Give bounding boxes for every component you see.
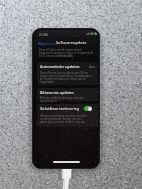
staticText: Geluidloze toelevering <box>40 106 80 111</box>
staticText: Automatische updates <box>40 64 80 69</box>
staticText: Algemeen <box>40 41 57 46</box>
staticText: Deze iPhone wordt automatisch <box>39 48 83 52</box>
staticText: Bètaversie-updates <box>40 90 74 95</box>
staticText: 21:46 <box>39 32 48 37</box>
button[interactable] <box>37 104 98 127</box>
staticText: en installeren wanneer deze wordt <box>40 77 86 81</box>
staticText: iPhone-beveiligingsreacties worden <box>40 114 87 118</box>
staticText: en is verbonden met wifi. <box>39 54 74 58</box>
staticText: Meer info... <box>59 54 75 58</box>
staticText: Aan <box>89 65 95 69</box>
staticText: sneller geleverd, zonder dat het <box>40 117 82 121</box>
staticText: opgeladen. <box>40 80 55 84</box>
staticText: bijgewerkt wanneer deze is vergrendeld <box>39 51 94 55</box>
button[interactable]: Back to Algemeen <box>38 40 57 46</box>
staticText: Deze iPhone kan updates van iOS en <box>40 71 88 75</box>
staticText: aangeboden. <box>40 99 58 103</box>
button[interactable]: Toggle Geluidloze toelevering <box>84 106 92 111</box>
staticText: Softwareupdate <box>56 40 87 45</box>
staticText: Beheer welke bètaversies worden <box>40 96 85 100</box>
staticText: apparaat opnieuw hoeft te starten. <box>40 120 86 124</box>
staticText: programma's automatisch downloaden <box>40 74 92 78</box>
button[interactable] <box>37 62 98 85</box>
button[interactable] <box>37 88 98 101</box>
